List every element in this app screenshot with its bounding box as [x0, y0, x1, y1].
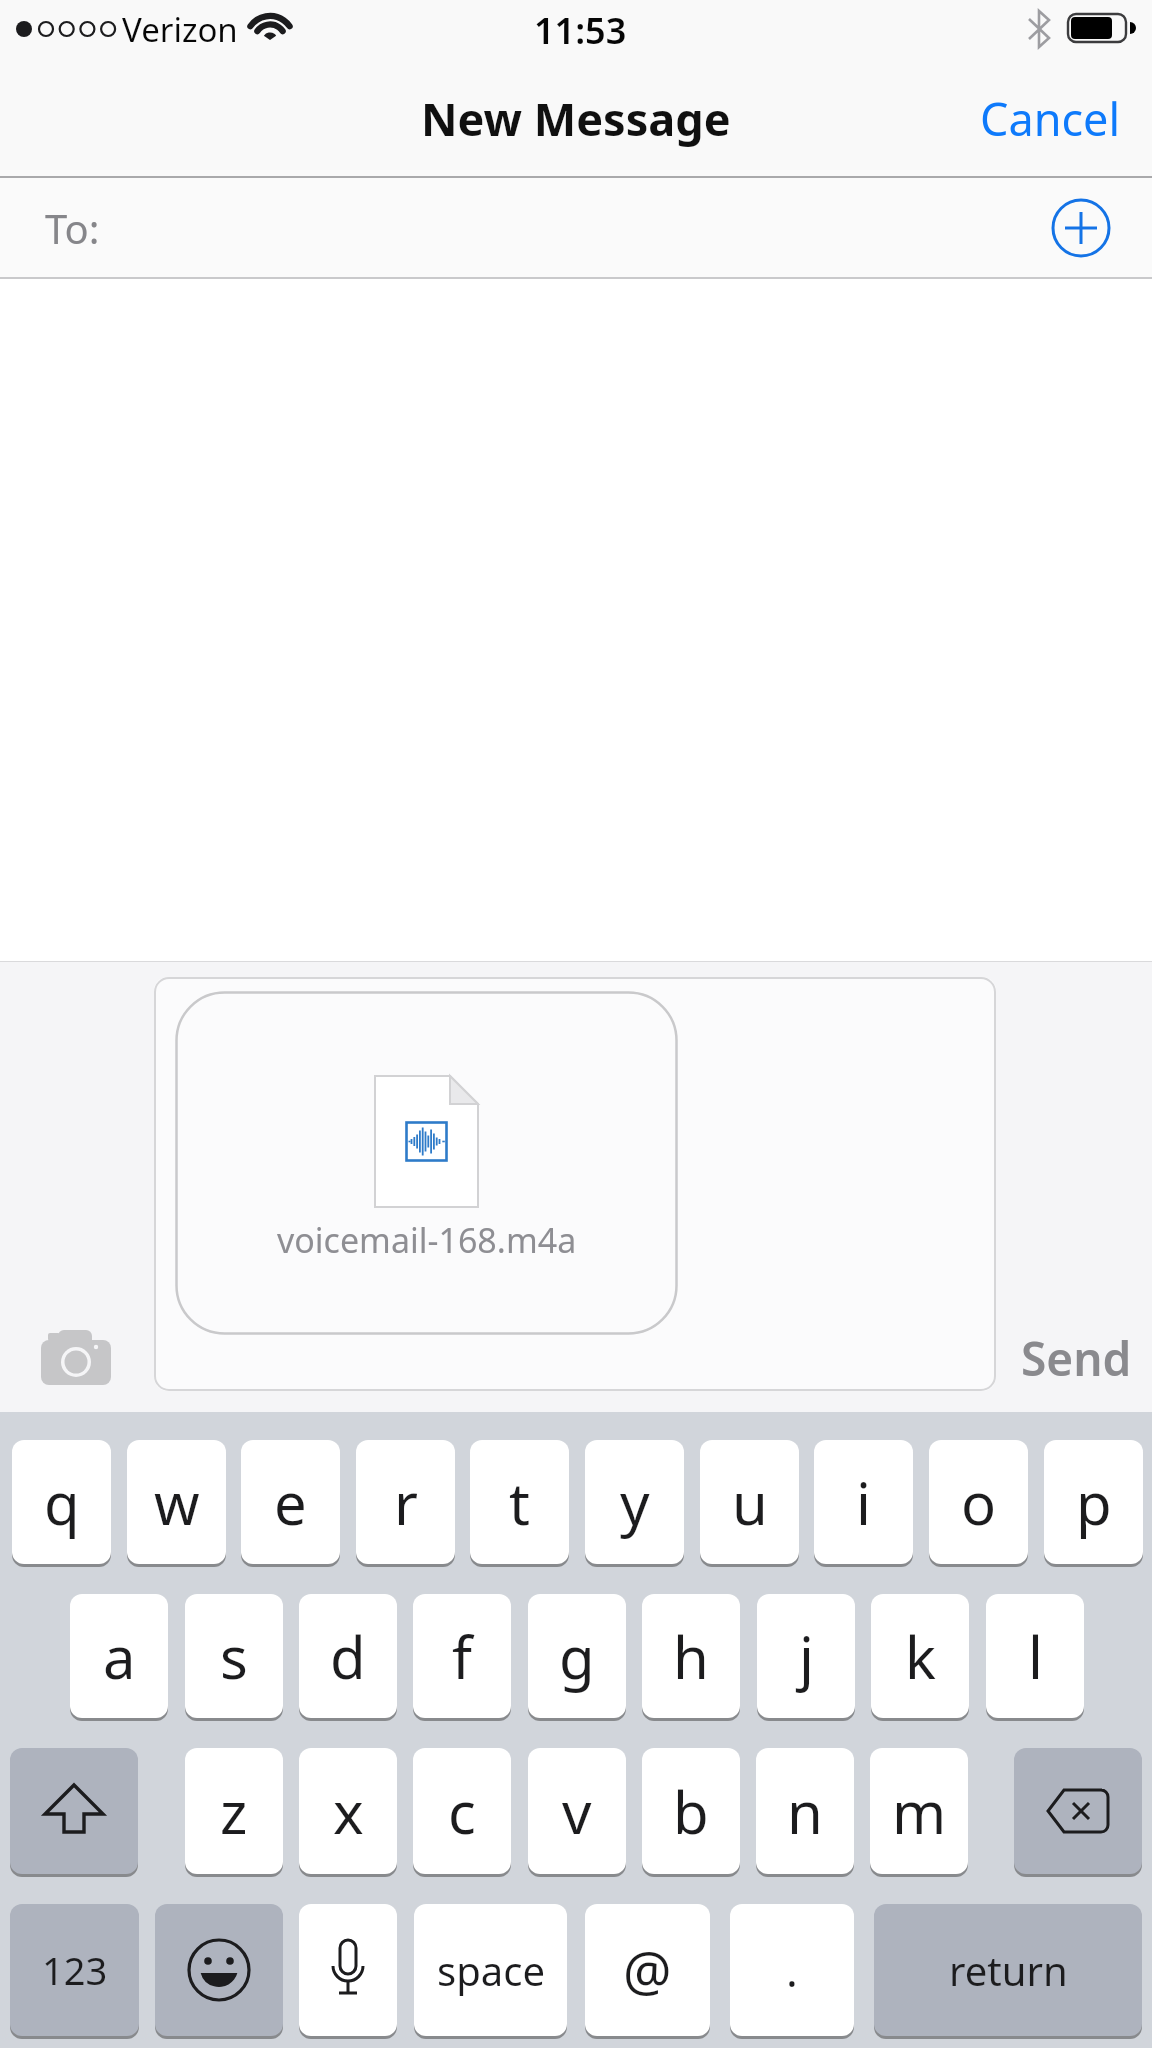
- button[interactable]: e: [241, 1440, 340, 1564]
- staticText: v: [562, 1772, 592, 1851]
- staticText: n: [787, 1772, 823, 1851]
- button[interactable]: m: [870, 1748, 968, 1874]
- button[interactable]: t: [470, 1440, 569, 1564]
- button[interactable]: [0, 178, 1152, 277]
- button[interactable]: h: [642, 1594, 740, 1718]
- staticText: t: [509, 1463, 530, 1542]
- staticText: 123: [42, 1944, 108, 1996]
- button[interactable]: Send: [1000, 1327, 1140, 1387]
- staticText: .: [786, 1940, 798, 2000]
- staticText: o: [961, 1463, 997, 1542]
- staticText: voicemail-168.m4a: [277, 1217, 577, 1257]
- staticText: space: [437, 1943, 545, 1997]
- button[interactable]: [1048, 195, 1114, 261]
- button[interactable]: v: [528, 1748, 626, 1874]
- button[interactable]: 123: [10, 1904, 139, 2036]
- button[interactable]: x: [299, 1748, 397, 1874]
- button[interactable]: s: [185, 1594, 283, 1718]
- staticText: z: [220, 1772, 248, 1851]
- button[interactable]: u: [700, 1440, 799, 1564]
- staticText: e: [274, 1463, 307, 1542]
- button[interactable]: [299, 1904, 397, 2036]
- staticText: d: [330, 1617, 366, 1696]
- button[interactable]: .: [730, 1904, 854, 2036]
- staticText: k: [905, 1617, 936, 1696]
- button[interactable]: [30, 1325, 122, 1395]
- staticText: j: [799, 1617, 814, 1696]
- staticText: Cancel: [980, 88, 1121, 148]
- staticText: To:: [45, 201, 100, 255]
- button[interactable]: n: [756, 1748, 854, 1874]
- button[interactable]: voicemail-168.m4a: [175, 991, 678, 1335]
- button[interactable]: r: [356, 1440, 455, 1564]
- staticText: m: [892, 1772, 947, 1851]
- button[interactable]: p: [1044, 1440, 1143, 1564]
- button[interactable]: [155, 1904, 283, 2036]
- button[interactable]: z: [185, 1748, 283, 1874]
- staticText: l: [1028, 1617, 1043, 1696]
- staticText: q: [44, 1463, 80, 1542]
- staticText: @: [623, 1933, 672, 2007]
- staticText: New Message: [421, 88, 731, 148]
- button[interactable]: return: [874, 1904, 1142, 2036]
- staticText: i: [856, 1463, 871, 1542]
- button[interactable]: o: [929, 1440, 1028, 1564]
- button[interactable]: b: [642, 1748, 740, 1874]
- staticText: w: [154, 1463, 200, 1542]
- staticText: s: [220, 1617, 248, 1696]
- staticText: y: [620, 1463, 650, 1542]
- button[interactable]: space: [414, 1904, 567, 2036]
- button[interactable]: j: [757, 1594, 855, 1718]
- button[interactable]: a: [70, 1594, 168, 1718]
- staticText: a: [103, 1617, 136, 1696]
- staticText: 11:53: [534, 6, 627, 52]
- staticText: f: [452, 1617, 472, 1696]
- staticText: p: [1076, 1463, 1112, 1542]
- button[interactable]: l: [986, 1594, 1084, 1718]
- button[interactable]: [1014, 1748, 1142, 1874]
- button[interactable]: d: [299, 1594, 397, 1718]
- staticText: return: [949, 1943, 1068, 1997]
- staticText: b: [673, 1772, 709, 1851]
- button[interactable]: [10, 1748, 138, 1874]
- staticText: g: [559, 1617, 595, 1696]
- staticText: r: [394, 1463, 418, 1542]
- staticText: Send: [1021, 1327, 1132, 1387]
- staticText: c: [448, 1772, 476, 1851]
- button[interactable]: w: [127, 1440, 226, 1564]
- button[interactable]: y: [585, 1440, 684, 1564]
- staticText: Verizon: [122, 7, 238, 52]
- button[interactable]: Cancel: [972, 88, 1152, 148]
- staticText: x: [333, 1772, 364, 1851]
- button[interactable]: g: [528, 1594, 626, 1718]
- button[interactable]: @: [585, 1904, 710, 2036]
- button[interactable]: f: [413, 1594, 511, 1718]
- staticText: u: [732, 1463, 768, 1542]
- button[interactable]: k: [871, 1594, 969, 1718]
- button[interactable]: i: [814, 1440, 913, 1564]
- staticText: h: [673, 1617, 709, 1696]
- button[interactable]: c: [413, 1748, 511, 1874]
- button[interactable]: q: [12, 1440, 111, 1564]
